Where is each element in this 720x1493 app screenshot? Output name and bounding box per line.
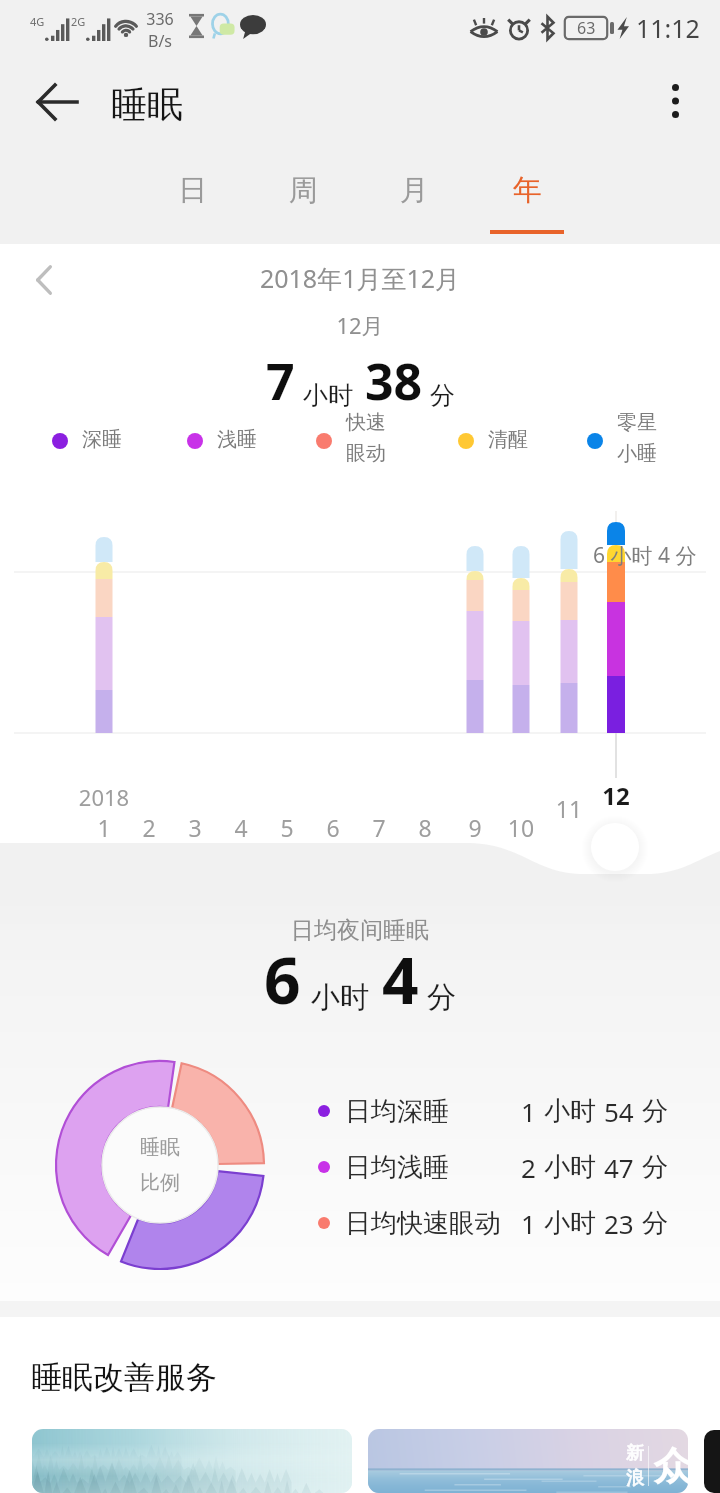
staticText: 新: [626, 1442, 644, 1465]
button[interactable]: 5: [267, 812, 307, 843]
staticText: 日均夜间睡眠: [0, 916, 720, 945]
button[interactable]: [46, 407, 146, 475]
button[interactable]: [581, 407, 681, 475]
staticText: 比例: [140, 1170, 180, 1195]
staticText: 63: [577, 17, 596, 39]
staticText: 11:12: [636, 11, 700, 45]
staticText: 2018: [76, 782, 132, 812]
staticText: 分: [642, 1207, 668, 1240]
staticText: 8: [405, 812, 445, 843]
staticText: B/s: [144, 30, 176, 52]
staticText: 分: [430, 380, 455, 411]
staticText: 睡眠: [140, 1135, 180, 1160]
staticText: 2018年1月至12月: [0, 261, 720, 295]
staticText: 11: [549, 793, 589, 824]
button[interactable]: [181, 407, 281, 475]
staticText: 分: [642, 1151, 668, 1184]
staticText: 月: [400, 172, 429, 209]
staticText: 7: [359, 812, 399, 843]
staticText: 小时: [544, 1151, 596, 1184]
staticText: 7: [266, 347, 295, 415]
staticText: 3: [175, 812, 215, 843]
button[interactable]: 日均浅睡: [318, 1149, 668, 1185]
staticText: 年: [513, 172, 542, 209]
button[interactable]: 3: [175, 812, 215, 843]
staticText: 小睡: [617, 441, 657, 466]
button[interactable]: More options: [644, 70, 706, 132]
staticText: 23: [604, 1206, 634, 1241]
staticText: 6: [264, 936, 301, 1023]
staticText: 众测: [654, 1442, 720, 1490]
staticText: 小时: [544, 1095, 596, 1128]
button[interactable]: 日均深睡: [318, 1093, 668, 1129]
staticText: 分: [642, 1095, 668, 1128]
staticText: 小时: [544, 1207, 596, 1240]
staticText: 5: [267, 812, 307, 843]
staticText: 54: [604, 1094, 634, 1129]
button[interactable]: Forest sleep sound: [32, 1429, 352, 1493]
staticText: 分: [427, 979, 456, 1016]
staticText: 日: [178, 172, 207, 209]
button[interactable]: 年: [472, 156, 582, 244]
staticText: 6 小时 4 分: [593, 541, 697, 570]
button[interactable]: Back: [23, 68, 91, 136]
staticText: 10: [501, 812, 541, 843]
staticText: 4G: [30, 14, 45, 29]
staticText: 快速: [346, 410, 386, 435]
staticText: 2G: [71, 14, 86, 29]
button[interactable]: 12: [596, 779, 636, 812]
button[interactable]: 10: [501, 812, 541, 843]
staticText: 2: [521, 1150, 536, 1185]
button[interactable]: Ocean sleep sound: [368, 1429, 688, 1493]
staticText: 小时: [311, 979, 369, 1016]
staticText: 4: [382, 936, 419, 1023]
staticText: 日均快速眼动: [345, 1207, 501, 1240]
staticText: 睡眠改善服务: [31, 1358, 217, 1397]
button[interactable]: 4: [221, 812, 261, 843]
staticText: 睡眠: [111, 82, 183, 127]
staticText: 12: [596, 779, 636, 812]
staticText: 浪: [626, 1467, 644, 1490]
staticText: 清醒: [488, 427, 528, 452]
button[interactable]: [310, 407, 410, 475]
staticText: 1: [84, 812, 124, 843]
button[interactable]: 日均快速眼动: [318, 1205, 668, 1241]
button[interactable]: 7: [359, 812, 399, 843]
staticText: 38: [365, 347, 423, 415]
button[interactable]: 8: [405, 812, 445, 843]
staticText: 日均深睡: [345, 1095, 449, 1128]
staticText: 9: [455, 812, 495, 843]
staticText: 1: [521, 1094, 536, 1129]
button[interactable]: 2: [129, 812, 169, 843]
button[interactable]: 1: [84, 812, 124, 843]
staticText: 小时: [303, 380, 353, 411]
staticText: 1: [521, 1206, 536, 1241]
staticText: 深睡: [82, 427, 122, 452]
button[interactable]: 6: [313, 812, 353, 843]
staticText: 6: [313, 812, 353, 843]
staticText: 周: [289, 172, 318, 209]
button[interactable]: 周: [248, 156, 358, 244]
button[interactable]: 月: [359, 156, 469, 244]
staticText: 47: [604, 1150, 634, 1185]
staticText: 眼动: [346, 441, 386, 466]
staticText: 4: [221, 812, 261, 843]
button[interactable]: [452, 407, 552, 475]
staticText: 12月: [0, 310, 720, 340]
button[interactable]: Scrub timeline: [585, 817, 645, 877]
button[interactable]: 11: [549, 793, 589, 824]
button[interactable]: Previous period: [20, 256, 68, 304]
staticText: 336: [144, 8, 176, 30]
staticText: 2: [129, 812, 169, 843]
button[interactable]: 9: [455, 812, 495, 843]
staticText: 浅睡: [217, 427, 257, 452]
staticText: 零星: [617, 410, 657, 435]
button[interactable]: 日: [137, 156, 247, 244]
staticText: 日均浅睡: [345, 1151, 449, 1184]
